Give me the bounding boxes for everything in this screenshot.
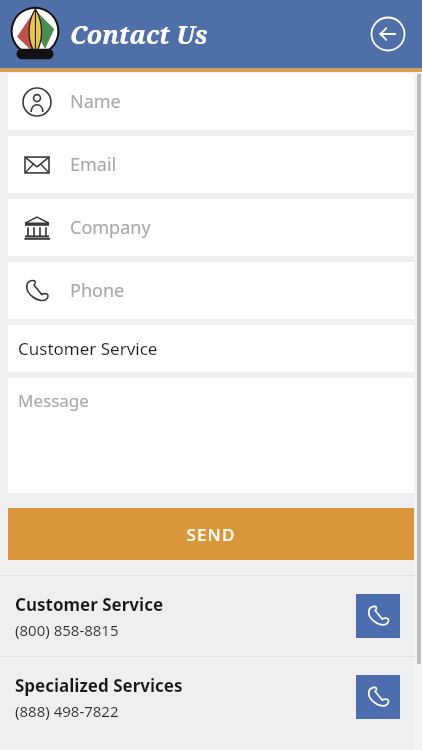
- button[interactable]: Company logo: [7, 6, 63, 62]
- staticText: Message: [18, 389, 89, 412]
- button[interactable]: Customer Service: [0, 576, 422, 656]
- button[interactable]: Customer Service: [8, 325, 414, 372]
- button[interactable]: Name: [8, 73, 414, 130]
- staticText: (800) 858-8815: [15, 620, 119, 640]
- staticText: SEND: [186, 523, 236, 546]
- button[interactable]: Email: [8, 136, 414, 193]
- button[interactable]: Specialized Services: [0, 657, 422, 737]
- staticText: Phone: [70, 278, 125, 303]
- button[interactable]: Back: [368, 14, 408, 54]
- button[interactable]: Company: [8, 199, 414, 256]
- staticText: (888) 498-7822: [15, 701, 119, 721]
- button[interactable]: Call Specialized Services: [356, 675, 400, 719]
- button[interactable]: Call Customer Service: [356, 594, 400, 638]
- staticText: Company: [70, 215, 151, 240]
- staticText: Email: [70, 152, 117, 177]
- staticText: Contact Us: [70, 17, 208, 51]
- staticText: Customer Service: [18, 337, 158, 360]
- staticText: Name: [70, 89, 121, 114]
- button[interactable]: SEND: [8, 508, 414, 560]
- staticText: Specialized Services: [15, 674, 183, 697]
- button[interactable]: Message: [8, 378, 414, 493]
- staticText: Customer Service: [15, 593, 164, 616]
- button[interactable]: Phone: [8, 262, 414, 319]
